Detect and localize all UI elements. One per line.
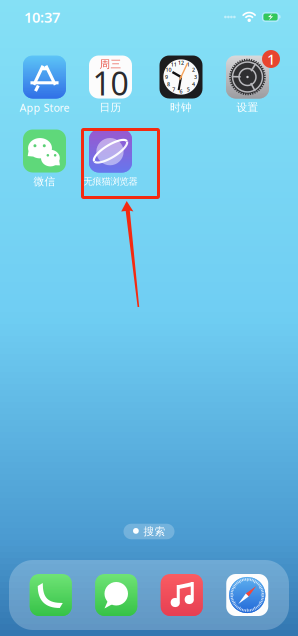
button[interactable]: 1 bbox=[142, 55, 220, 113]
button[interactable] bbox=[226, 574, 268, 616]
staticText: 3 bbox=[194, 73, 197, 81]
button[interactable]: 无痕猫浏览器 bbox=[71, 129, 149, 187]
staticText: 12 bbox=[178, 59, 184, 66]
staticText: 10:37 bbox=[24, 7, 60, 27]
button[interactable]: 周三 bbox=[71, 55, 149, 113]
staticText: 设置 bbox=[236, 101, 258, 114]
staticText: 时钟 bbox=[170, 101, 192, 114]
staticText: 5 bbox=[187, 86, 190, 93]
staticText: 微信 bbox=[33, 175, 55, 188]
staticText: App Store bbox=[19, 100, 69, 115]
staticText: 日历 bbox=[99, 101, 121, 114]
staticText: 6 bbox=[179, 88, 182, 95]
staticText: 10 bbox=[165, 66, 171, 73]
button[interactable]: App Store bbox=[5, 55, 83, 113]
button[interactable] bbox=[161, 574, 203, 616]
button[interactable]: 搜索 bbox=[123, 524, 174, 539]
button[interactable]: 微信 bbox=[5, 129, 83, 187]
staticText: 1 bbox=[267, 49, 275, 69]
staticText: 4 bbox=[192, 81, 195, 88]
staticText: 8 bbox=[167, 81, 170, 88]
staticText: 9 bbox=[165, 73, 168, 81]
staticText: 10 bbox=[92, 62, 128, 104]
button[interactable] bbox=[30, 574, 72, 616]
button[interactable]: 设置 bbox=[208, 55, 286, 113]
staticText: 2 bbox=[192, 66, 195, 73]
button[interactable] bbox=[95, 574, 137, 616]
staticText: 7 bbox=[172, 86, 175, 93]
staticText: 搜索 bbox=[143, 525, 165, 538]
staticText: 无痕猫浏览器 bbox=[83, 176, 137, 187]
staticText: 周三 bbox=[99, 57, 121, 71]
staticText: 1 bbox=[187, 61, 190, 68]
staticText: 11 bbox=[171, 61, 177, 68]
